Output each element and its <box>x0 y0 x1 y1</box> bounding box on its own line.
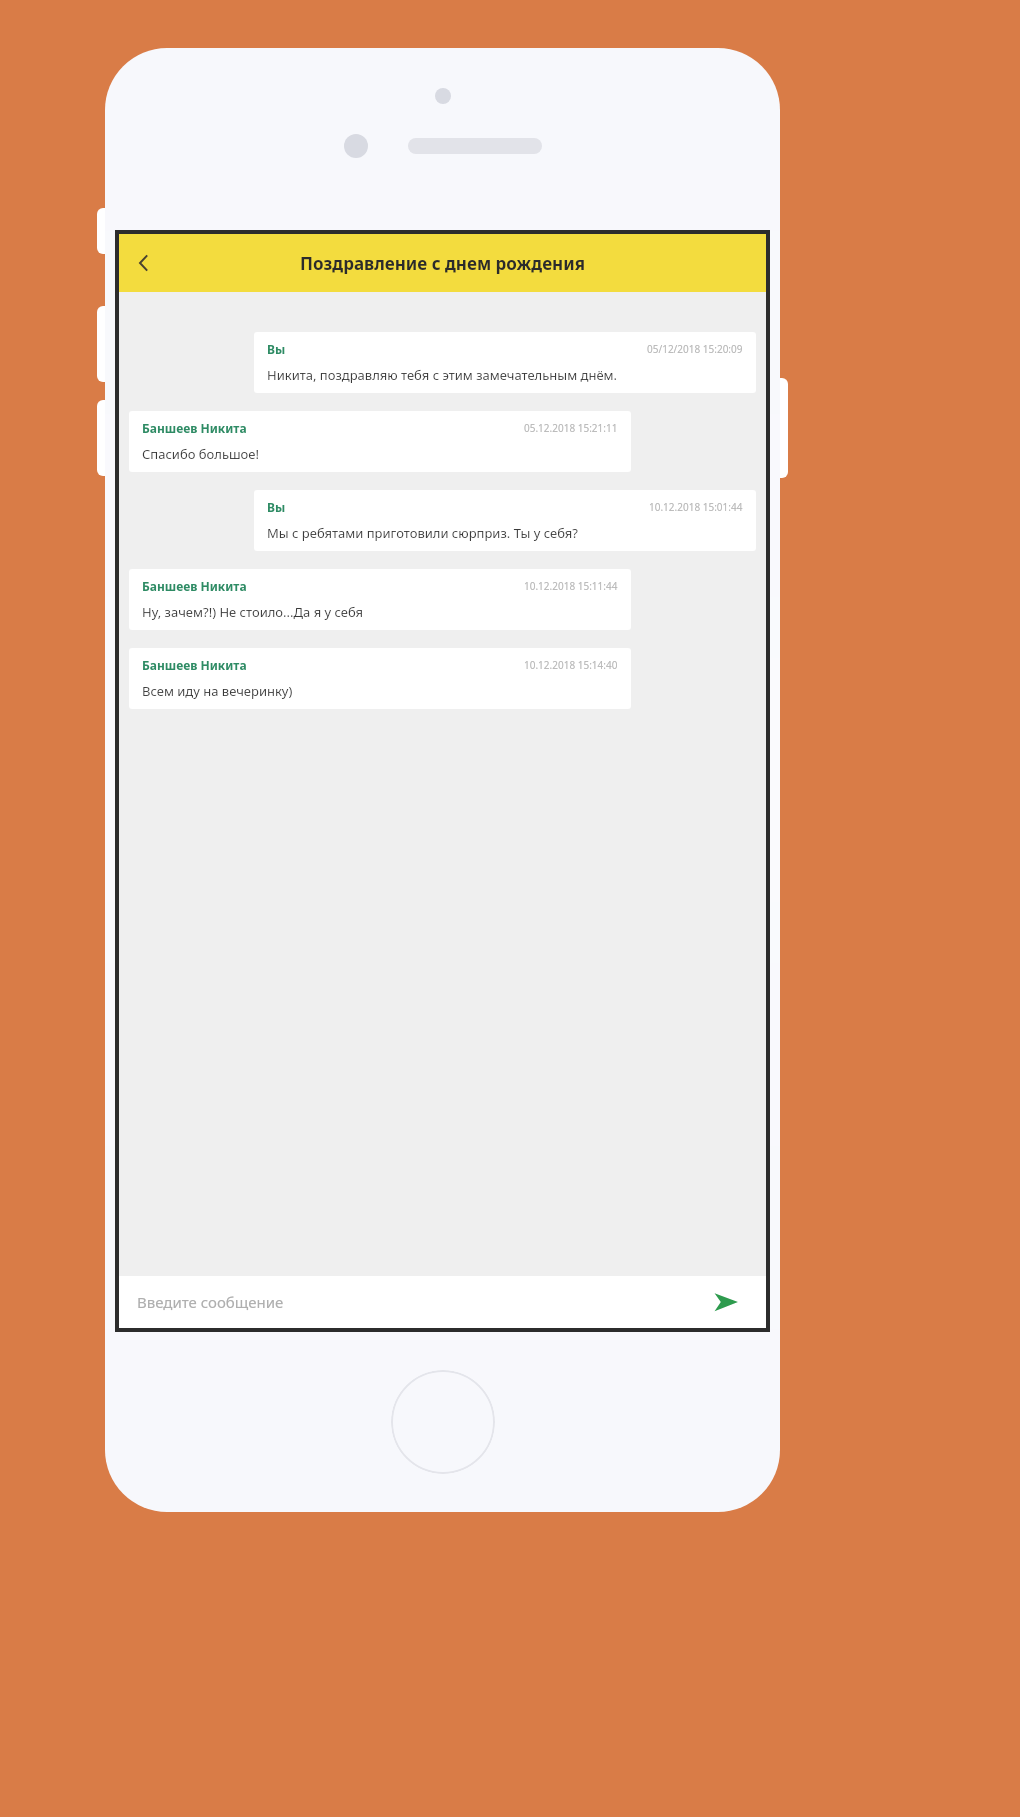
button[interactable]: Баншеев Никита <box>129 648 631 709</box>
button[interactable]: Send <box>704 1280 748 1324</box>
staticText: 05/12/2018 15:20:09 <box>647 342 743 356</box>
staticText: Вы <box>267 341 286 357</box>
button[interactable]: Home <box>391 1370 495 1474</box>
staticText: Вы <box>267 499 286 515</box>
staticText: Мы с ребятами приготовили сюрприз. Ты у … <box>267 524 578 542</box>
button[interactable]: Вы <box>254 332 756 393</box>
staticText: Баншеев Никита <box>142 420 247 436</box>
staticText: Баншеев Никита <box>142 578 247 594</box>
staticText: Баншеев Никита <box>142 657 247 673</box>
button[interactable]: Баншеев Никита <box>129 411 631 472</box>
staticText: Введите сообщение <box>137 1292 284 1312</box>
staticText: Никита, поздравляю тебя с этим замечател… <box>267 366 618 384</box>
button[interactable]: Back <box>119 238 169 288</box>
staticText: Ну, зачем?!) Не стоило...Да я у себя <box>142 603 364 621</box>
button[interactable]: Баншеев Никита <box>129 569 631 630</box>
staticText: 10.12.2018 15:11:44 <box>524 579 618 593</box>
button[interactable]: Вы <box>254 490 756 551</box>
button[interactable]: Введите сообщение <box>137 1276 704 1328</box>
staticText: Всем иду на вечеринку) <box>142 682 293 700</box>
staticText: 10.12.2018 15:14:40 <box>524 658 618 672</box>
staticText: 10.12.2018 15:01:44 <box>649 500 743 514</box>
staticText: Спасибо большое! <box>142 445 259 463</box>
staticText: 05.12.2018 15:21:11 <box>524 421 618 435</box>
staticText: Поздравление с днем рождения <box>300 252 585 275</box>
